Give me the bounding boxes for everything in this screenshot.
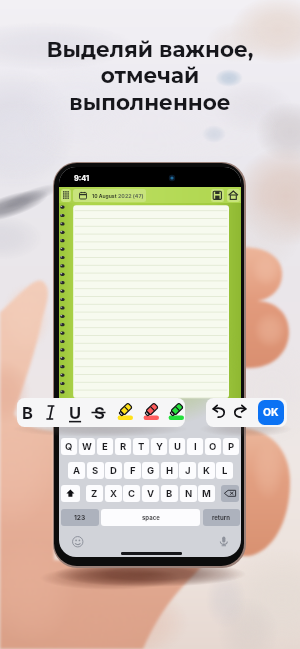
button[interactable]: U: [169, 438, 185, 455]
button[interactable]: B: [161, 485, 178, 502]
button[interactable]: Highlighter: [142, 402, 162, 424]
button[interactable]: W: [79, 438, 95, 455]
button[interactable]: OK: [258, 400, 284, 425]
staticText: N: [185, 488, 193, 499]
staticText: B: [166, 488, 173, 499]
button[interactable]: Highlighter: [116, 402, 136, 424]
staticText: L: [222, 465, 228, 476]
staticText: 9:41: [74, 174, 90, 183]
staticText: A: [73, 465, 81, 476]
staticText: U: [69, 403, 82, 423]
button[interactable]: T: [133, 438, 149, 455]
staticText: O: [209, 441, 217, 452]
staticText: T: [138, 441, 145, 452]
staticText: S: [94, 403, 105, 423]
button[interactable]: N: [180, 485, 197, 502]
button[interactable]: R: [115, 438, 131, 455]
staticText: F: [130, 465, 136, 476]
staticText: V: [147, 488, 155, 499]
button[interactable]: C: [123, 485, 140, 502]
button[interactable]: X: [105, 485, 122, 502]
staticText: P: [228, 441, 235, 452]
button[interactable]: F: [124, 462, 141, 479]
button[interactable]: space: [101, 509, 200, 526]
staticText: G: [147, 465, 155, 476]
button[interactable]: Y: [151, 438, 167, 455]
staticText: C: [128, 488, 136, 499]
staticText: 2022 (47): [118, 193, 144, 199]
button[interactable]: O: [205, 438, 221, 455]
button[interactable]: Z: [86, 485, 103, 502]
staticText: X: [110, 488, 118, 499]
staticText: M: [202, 488, 211, 499]
button[interactable]: V: [142, 485, 159, 502]
button[interactable]: M: [198, 485, 215, 502]
staticText: Выделяй важное, отмечай выполненное: [10, 36, 290, 128]
button[interactable]: D: [105, 462, 122, 479]
staticText: B: [22, 403, 33, 423]
staticText: J: [185, 465, 191, 476]
staticText: E: [102, 441, 108, 452]
button[interactable]: G: [142, 462, 159, 479]
staticText: I: [194, 441, 197, 452]
button[interactable]: Italic: [41, 398, 61, 427]
staticText: D: [110, 465, 117, 476]
button[interactable]: Menu: [61, 189, 71, 202]
button[interactable]: E: [97, 438, 113, 455]
staticText: return: [212, 514, 231, 521]
button[interactable]: S: [87, 462, 104, 479]
staticText: Y: [156, 441, 163, 452]
button[interactable]: Emoji: [72, 536, 84, 548]
button[interactable]: Shift: [61, 485, 80, 502]
button[interactable]: K: [198, 462, 215, 479]
button[interactable]: 10 August: [73, 189, 146, 202]
staticText: 123: [74, 514, 86, 522]
button[interactable]: 123: [61, 509, 99, 526]
staticText: OK: [263, 406, 279, 419]
button[interactable]: Undo: [210, 404, 229, 421]
staticText: H: [166, 465, 174, 476]
staticText: Z: [91, 488, 98, 499]
button[interactable]: A: [68, 462, 85, 479]
staticText: Q: [65, 441, 73, 452]
button[interactable]: Dictation: [218, 536, 230, 548]
button[interactable]: S: [89, 398, 109, 427]
staticText: R: [120, 441, 127, 452]
staticText: 10 August: [92, 193, 117, 199]
button[interactable]: Redo: [230, 404, 249, 421]
button[interactable]: U: [65, 398, 85, 427]
staticText: W: [82, 441, 92, 452]
button[interactable]: Highlighter: [167, 402, 185, 424]
button[interactable]: J: [179, 462, 196, 479]
button[interactable]: return: [203, 509, 240, 526]
button[interactable]: I: [187, 438, 203, 455]
button[interactable]: Q: [61, 438, 77, 455]
staticText: S: [92, 465, 99, 476]
button[interactable]: Home: [227, 189, 240, 202]
staticText: space: [142, 514, 160, 521]
button[interactable]: H: [161, 462, 178, 479]
button[interactable]: L: [216, 462, 233, 479]
button[interactable]: P: [223, 438, 239, 455]
button[interactable]: B: [17, 398, 37, 427]
staticText: K: [203, 465, 210, 476]
button[interactable]: Save: [211, 189, 224, 202]
button[interactable]: Backspace: [221, 485, 239, 502]
staticText: U: [174, 441, 181, 452]
